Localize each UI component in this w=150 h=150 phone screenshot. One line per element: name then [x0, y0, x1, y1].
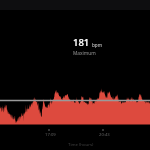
staticText: Time (hours): [68, 141, 94, 147]
staticText: 17:09: [45, 132, 56, 138]
staticText: bpm: [92, 42, 102, 48]
staticText: 20:43: [99, 132, 110, 138]
staticText: 181: [73, 36, 90, 49]
staticText: Maximum: [73, 50, 96, 57]
